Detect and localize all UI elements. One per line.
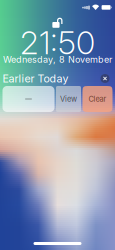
button[interactable]: Clear (82, 86, 112, 112)
button[interactable]: Clear all notifications (99, 73, 110, 84)
staticText: Wednesday, 8 November (3, 54, 112, 65)
staticText: Clear (88, 94, 106, 103)
staticText: 21:50 (20, 23, 95, 62)
staticText: Earlier Today (2, 72, 68, 85)
staticText: View (60, 94, 77, 103)
button[interactable]: View (56, 86, 81, 112)
